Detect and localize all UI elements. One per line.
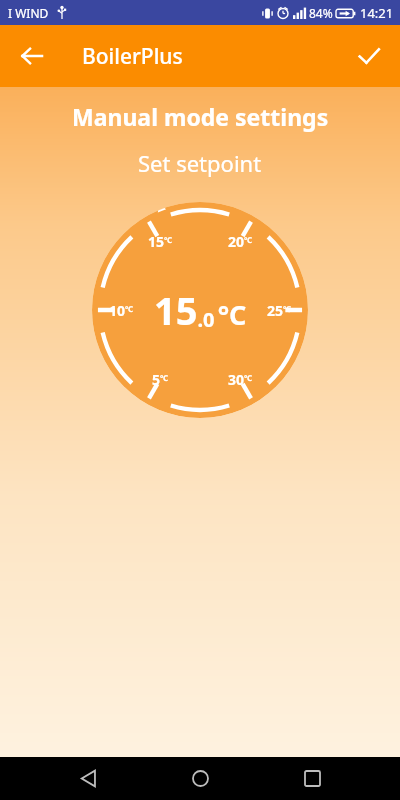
staticText: 15℃ [148,232,173,251]
button[interactable]: Recent apps [288,757,336,800]
staticText: 20℃ [228,232,253,251]
staticText: I WIND [8,5,49,21]
button[interactable]: Confirm [347,34,391,78]
staticText: 84% [309,5,333,21]
staticText: Set setpoint [138,148,262,178]
button[interactable]: Setpoint dial, 15.0 degrees Celsius [92,202,308,418]
staticText: Manual mode settings [72,101,329,132]
staticText: 25℃ [267,301,292,320]
button[interactable]: Back [64,757,112,800]
staticText: BoilerPlus [82,42,183,71]
button[interactable]: Back [10,34,54,78]
button[interactable]: Home [176,757,224,800]
staticText: 5℃ [152,370,169,389]
staticText: 30℃ [228,370,253,389]
staticText: 15.0 °C [154,284,247,336]
staticText: 10℃ [109,301,134,320]
staticText: 14:21 [360,4,394,22]
